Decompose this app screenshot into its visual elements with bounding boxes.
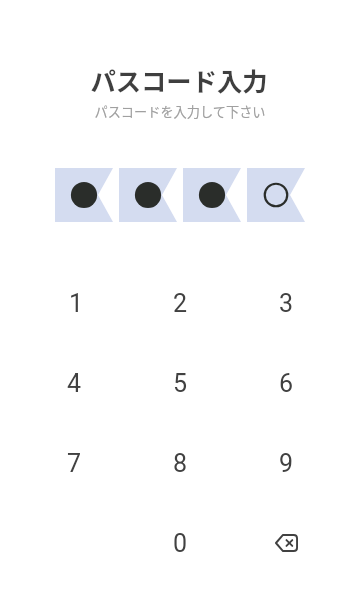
button[interactable]: 0: [127, 503, 233, 583]
staticText: パスコード入力: [90, 62, 268, 99]
button[interactable]: 6: [233, 343, 339, 423]
button[interactable]: 7: [21, 423, 127, 503]
staticText: 0: [173, 529, 188, 558]
button[interactable]: 8: [127, 423, 233, 503]
button[interactable]: 9: [233, 423, 339, 503]
staticText: 6: [279, 369, 294, 398]
button[interactable]: 5: [127, 343, 233, 423]
staticText: 7: [67, 449, 82, 478]
button[interactable]: 1: [21, 263, 127, 343]
staticText: 8: [173, 449, 188, 478]
staticText: 9: [279, 449, 294, 478]
button[interactable]: Backspace: [233, 503, 339, 583]
staticText: 3: [279, 289, 294, 318]
staticText: 5: [173, 369, 188, 398]
button[interactable]: 2: [127, 263, 233, 343]
staticText: 2: [173, 289, 188, 318]
staticText: パスコードを入力して下さい: [94, 102, 266, 121]
staticText: 1: [69, 289, 84, 318]
staticText: 4: [67, 369, 82, 398]
button[interactable]: 3: [233, 263, 339, 343]
button[interactable]: 4: [21, 343, 127, 423]
